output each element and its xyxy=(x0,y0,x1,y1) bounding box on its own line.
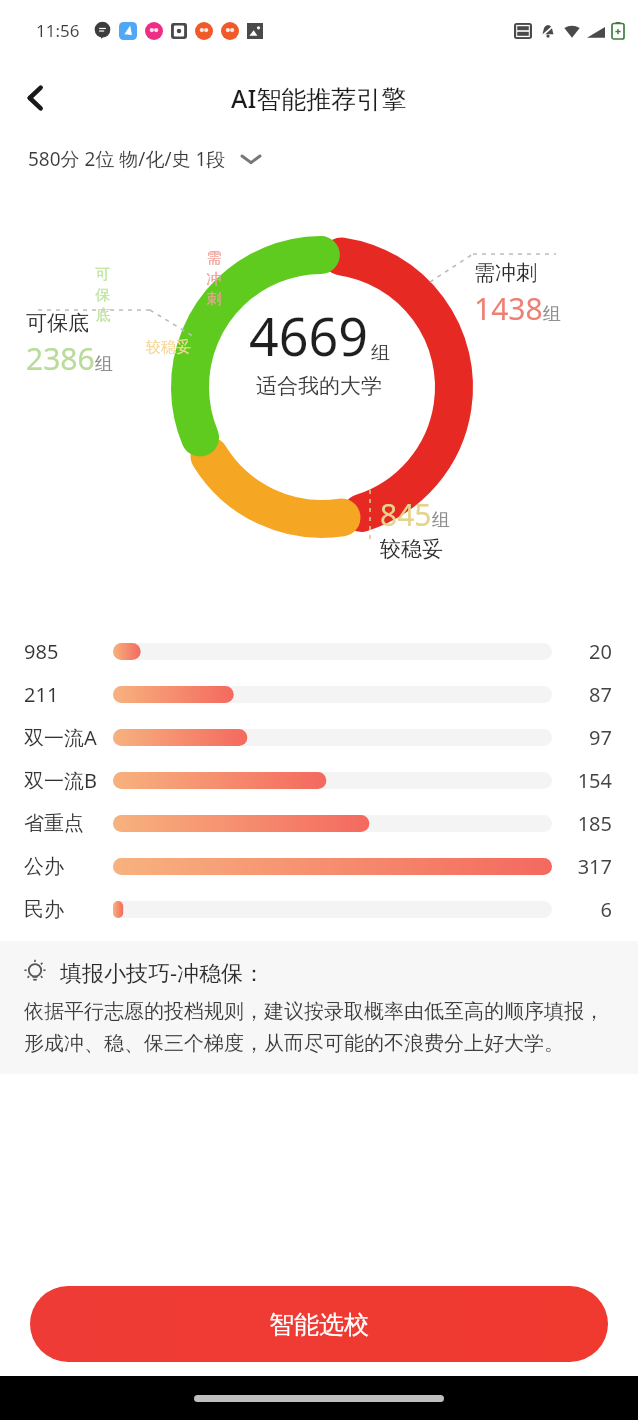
staticText: 双一流B xyxy=(24,767,97,794)
staticText: 1438 xyxy=(474,288,543,329)
staticText: 组 xyxy=(543,303,561,326)
staticText: 较稳妥 xyxy=(146,338,191,357)
staticText: 580分 2位 物/化/史 1段 xyxy=(28,146,226,172)
button[interactable]: 985 xyxy=(0,630,638,673)
staticText: 可保底 xyxy=(93,265,113,325)
staticText: 依据平行志愿的投档规则，建议按录取概率由低至高的顺序填报，形成冲、稳、保三个梯度… xyxy=(24,999,614,1056)
button[interactable]: 双一流B xyxy=(0,759,638,802)
staticText: 11:56 xyxy=(36,19,80,42)
staticText: 可保底 xyxy=(26,310,89,336)
staticText: 需冲刺 xyxy=(474,260,537,286)
staticText: 2386 xyxy=(26,338,95,379)
staticText: 较稳妥 xyxy=(380,536,443,562)
staticText: 公办 xyxy=(24,854,64,879)
button[interactable]: 公办 xyxy=(0,845,638,888)
staticText: AI智能推荐引擎 xyxy=(231,81,407,115)
staticText: 6 xyxy=(564,896,612,923)
staticText: 需冲刺 xyxy=(204,249,224,309)
button[interactable]: 民办 xyxy=(0,888,638,931)
button[interactable]: 580分 2位 物/化/史 1段 xyxy=(22,136,266,182)
button[interactable]: 省重点 xyxy=(0,802,638,845)
button[interactable]: 211 xyxy=(0,673,638,716)
staticText: 185 xyxy=(564,810,612,837)
staticText: 组 xyxy=(432,509,450,532)
staticText: 985 xyxy=(24,638,59,665)
staticText: 省重点 xyxy=(24,811,84,836)
staticText: 845 xyxy=(380,494,432,535)
staticText: 317 xyxy=(564,853,612,880)
button[interactable]: 双一流A xyxy=(0,716,638,759)
staticText: 民办 xyxy=(24,897,64,922)
staticText: 20 xyxy=(564,638,612,665)
staticText: 97 xyxy=(564,724,612,751)
staticText: 双一流A xyxy=(24,724,97,751)
staticText: 4669 xyxy=(249,300,368,371)
staticText: 154 xyxy=(564,767,612,794)
button[interactable]: Back xyxy=(8,70,64,126)
staticText: 填报小技巧-冲稳保： xyxy=(60,957,266,987)
staticText: 211 xyxy=(24,681,59,708)
staticText: 组 xyxy=(371,341,390,365)
staticText: 适合我的大学 xyxy=(256,373,382,399)
staticText: 智能选校 xyxy=(269,1309,369,1340)
button[interactable]: 智能选校 xyxy=(30,1286,608,1362)
staticText: 87 xyxy=(564,681,612,708)
staticText: 组 xyxy=(95,353,113,376)
